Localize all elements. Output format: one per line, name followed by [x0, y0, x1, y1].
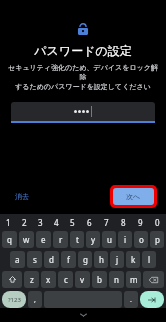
staticText: q — [7, 234, 12, 245]
staticText: 消去 — [15, 192, 29, 201]
staticText: 9 — [138, 217, 143, 228]
button[interactable]: j — [110, 251, 124, 268]
button[interactable]: w — [19, 231, 34, 248]
staticText: 0 — [155, 217, 160, 228]
staticText: ?123 — [8, 296, 21, 304]
staticText: m — [130, 274, 138, 285]
button[interactable] — [11, 102, 155, 123]
button[interactable]: x — [41, 271, 56, 288]
button[interactable]: Enter — [140, 291, 164, 308]
staticText: セキュリティ強化のため、デバイスをロック解除 するためのパスワードを設定してくだ… — [8, 63, 158, 92]
staticText: s — [33, 254, 37, 265]
button[interactable]: 9 — [132, 216, 149, 229]
staticText: o — [139, 234, 144, 245]
button[interactable]: v — [75, 271, 90, 288]
staticText: y — [91, 234, 96, 245]
staticText: 5 — [70, 217, 75, 228]
staticText: c — [64, 274, 68, 285]
button[interactable]: n — [109, 271, 124, 288]
button[interactable]: 6 — [81, 216, 98, 229]
staticText: p — [155, 234, 160, 245]
button[interactable]: o — [134, 231, 148, 248]
button[interactable]: u — [102, 231, 116, 248]
button[interactable]: a — [10, 251, 25, 268]
button[interactable]: b — [92, 271, 107, 288]
staticText: 1 — [6, 217, 11, 228]
staticText: u — [107, 234, 112, 245]
button[interactable]: ?123 — [2, 291, 26, 308]
staticText: t — [76, 234, 79, 245]
button[interactable]: q — [2, 231, 17, 248]
staticText: d — [49, 254, 54, 265]
staticText: r — [59, 234, 63, 245]
button[interactable]: c — [58, 271, 73, 288]
staticText: 8 — [121, 217, 126, 228]
button[interactable]: Backspace — [143, 271, 164, 288]
staticText: i — [124, 234, 127, 245]
button[interactable]: i — [118, 231, 132, 248]
staticText: l — [148, 254, 151, 265]
button[interactable]: e — [36, 231, 51, 248]
staticText: 7 — [104, 217, 109, 228]
staticText: , — [34, 295, 36, 305]
button[interactable]: 3 — [32, 216, 48, 229]
button[interactable]: 7 — [98, 216, 115, 229]
staticText: 3 — [38, 217, 43, 228]
button[interactable]: p — [150, 231, 164, 248]
button[interactable]: Shift — [2, 271, 22, 288]
staticText: h — [99, 254, 104, 265]
button[interactable]: 0 — [149, 216, 166, 229]
button[interactable]: d — [44, 251, 59, 268]
staticText: w — [23, 234, 30, 245]
button[interactable]: 2 — [16, 216, 32, 229]
button[interactable]: h — [94, 251, 108, 268]
button[interactable]: t — [70, 231, 84, 248]
button[interactable]: 1 — [0, 216, 16, 229]
button[interactable]: r — [53, 231, 68, 248]
staticText: 4 — [54, 217, 59, 228]
staticText: k — [131, 254, 136, 265]
button[interactable]: 次へ — [113, 188, 154, 205]
staticText: n — [114, 274, 119, 285]
button[interactable]: z — [24, 271, 39, 288]
staticText: 2 — [22, 217, 27, 228]
button[interactable]: s — [27, 251, 42, 268]
button[interactable]: l — [142, 251, 156, 268]
staticText: a — [15, 254, 20, 265]
staticText: 6 — [87, 217, 92, 228]
button[interactable]: g — [78, 251, 92, 268]
staticText: j — [116, 254, 119, 265]
button[interactable]: 4 — [48, 216, 64, 229]
button[interactable]: y — [86, 231, 100, 248]
button[interactable]: 消去 — [11, 189, 33, 204]
staticText: . — [130, 295, 132, 305]
staticText: x — [46, 274, 51, 285]
button[interactable]: Hide keyboard — [73, 309, 93, 321]
staticText: b — [97, 274, 102, 285]
staticText: 次へ — [126, 192, 141, 201]
button[interactable]: . — [124, 291, 138, 308]
button[interactable]: , — [28, 291, 42, 308]
staticText: z — [30, 274, 34, 285]
button[interactable]: 8 — [115, 216, 132, 229]
staticText: e — [41, 234, 46, 245]
button[interactable]: m — [126, 271, 141, 288]
button[interactable]: 5 — [64, 216, 81, 229]
staticText: パスワードの設定 — [34, 43, 132, 58]
staticText: g — [83, 254, 88, 265]
button[interactable]: k — [126, 251, 140, 268]
staticText: f — [67, 254, 70, 265]
button[interactable]: f — [61, 251, 76, 268]
staticText: v — [80, 274, 85, 285]
